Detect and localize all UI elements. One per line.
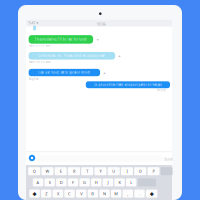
staticText: Q — [33, 168, 36, 174]
staticText: Contents are ok . Please send me copy by… — [38, 54, 105, 57]
staticText: ◆ — [150, 191, 154, 197]
staticText: T — [86, 168, 88, 174]
staticText: G — [83, 180, 86, 185]
staticText: . — [139, 191, 140, 196]
staticText: X — [57, 191, 59, 196]
staticText: 10:36 — [96, 21, 105, 27]
staticText: 9:41 ▾ — [28, 20, 38, 25]
staticText: W — [45, 168, 49, 174]
staticText: O — [139, 168, 142, 174]
staticText: M — [114, 191, 118, 196]
staticText: P — [152, 168, 154, 174]
staticText: E — [60, 168, 62, 174]
staticText: Mon 09:51 AM — [29, 44, 50, 47]
staticText: Send — [164, 156, 172, 162]
staticText: Je peux utiliser texte voix pour parler … — [94, 83, 161, 86]
staticText: ✦ — [118, 54, 121, 59]
staticText: English — [29, 77, 39, 81]
staticText: Y — [99, 168, 101, 174]
staticText: L — [130, 180, 132, 185]
staticText: D — [60, 180, 63, 185]
staticText: I — [126, 168, 127, 174]
staticText: ✦ — [103, 71, 106, 75]
staticText: V — [80, 191, 82, 196]
staticText: French — [157, 88, 166, 92]
staticText: , — [127, 191, 128, 196]
staticText: A — [36, 180, 39, 185]
staticText: I can use Voice Text to speak in French — [38, 71, 90, 74]
staticText: K — [119, 180, 121, 185]
staticText: Z — [45, 191, 47, 196]
staticText: H — [95, 180, 98, 185]
staticText: J — [107, 180, 108, 185]
staticText: ✦ — [96, 38, 99, 42]
staticText: R — [73, 168, 75, 174]
staticText: N — [103, 191, 106, 196]
staticText: F — [72, 180, 74, 185]
staticText: ◆ — [33, 191, 37, 197]
staticText: B — [91, 191, 94, 196]
staticText: Mon 09:53 AM — [29, 60, 50, 64]
staticText: I'm sorry darling I'll be late for lunch — [35, 38, 87, 41]
staticText: C — [68, 191, 71, 196]
staticText: U — [112, 168, 115, 174]
staticText: S — [49, 180, 51, 185]
